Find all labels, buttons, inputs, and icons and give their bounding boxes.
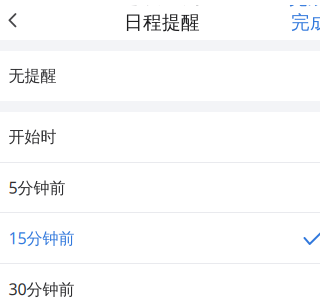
button[interactable]: 5分钟前 xyxy=(0,163,320,212)
button[interactable]: Back xyxy=(0,5,30,35)
staticText: 完成 xyxy=(291,11,320,34)
staticText: 选课表我与 xyxy=(122,0,202,8)
staticText: 15分钟前 xyxy=(8,227,74,249)
staticText: 5分钟前 xyxy=(8,177,65,198)
staticText: 完成 xyxy=(289,0,320,9)
button[interactable]: 无提醒 xyxy=(0,51,320,101)
button[interactable]: 开始时 xyxy=(0,112,320,162)
button[interactable]: 30分钟前 xyxy=(0,264,320,300)
staticText: 30分钟前 xyxy=(8,278,74,300)
staticText: 无提醒 xyxy=(8,66,56,86)
staticText: 开始时 xyxy=(8,127,56,147)
button[interactable]: 15分钟前 xyxy=(0,213,320,263)
button[interactable]: 完成 xyxy=(291,3,320,42)
staticText: 日程提醒 xyxy=(124,11,200,34)
